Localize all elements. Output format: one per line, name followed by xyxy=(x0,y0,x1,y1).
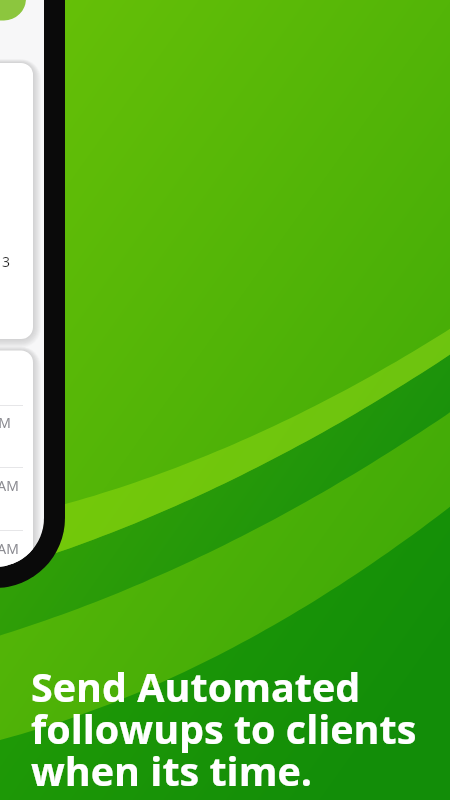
staticText: 10:15 AM xyxy=(0,476,19,495)
staticText: Send Automated followups to clients when… xyxy=(31,660,417,798)
staticText: 3 xyxy=(2,252,11,271)
staticText: 11:00 AM xyxy=(0,539,19,558)
staticText: 9:30 AM xyxy=(0,413,11,432)
